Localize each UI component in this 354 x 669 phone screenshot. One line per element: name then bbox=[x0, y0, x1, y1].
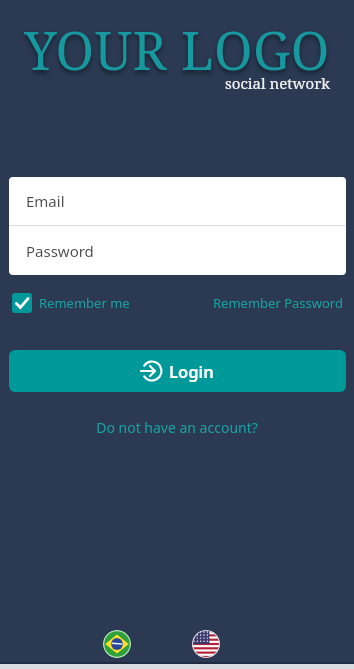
staticText: Login bbox=[169, 360, 214, 382]
button[interactable]: Email bbox=[9, 177, 346, 225]
staticText: Remember me bbox=[39, 294, 130, 312]
button[interactable]: Remember me bbox=[12, 293, 130, 313]
staticText: YOUR LOGO bbox=[0, 14, 354, 85]
button[interactable] bbox=[103, 630, 131, 658]
button[interactable] bbox=[192, 630, 220, 658]
button[interactable]: Remember Password bbox=[213, 294, 343, 312]
button[interactable]: Do not have an account? bbox=[0, 418, 354, 437]
staticText: Email bbox=[26, 191, 65, 211]
staticText: social network bbox=[0, 73, 330, 93]
button[interactable]: Password bbox=[9, 226, 346, 275]
staticText: Password bbox=[26, 241, 94, 261]
button[interactable]: Login bbox=[9, 350, 346, 392]
